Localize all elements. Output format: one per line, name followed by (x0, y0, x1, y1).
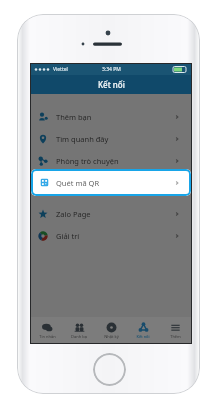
staticText: Giải trí (56, 231, 80, 241)
staticText: Kết nối (98, 79, 125, 90)
staticText: Tìm quanh đây (56, 134, 109, 144)
button[interactable]: Tìm quanh đây (31, 128, 191, 150)
staticText: Tin nhắn (39, 334, 56, 339)
button[interactable]: Tin nhắn (31, 317, 63, 343)
staticText: Viettel (53, 66, 68, 73)
staticText: Nhật ký (104, 334, 119, 339)
other: Home (93, 353, 126, 386)
button[interactable]: Phòng trò chuyện (31, 150, 191, 172)
staticText: Thêm bạn (56, 112, 92, 122)
staticText: Quét mã QR (56, 178, 100, 188)
staticText: Thêm (170, 334, 181, 339)
staticText: Danh bạ (71, 334, 87, 339)
button[interactable]: Quét mã QR (31, 169, 191, 196)
staticText: 3:34 PM (102, 66, 121, 73)
button[interactable]: Zalo Page (31, 203, 191, 225)
button[interactable]: Thêm bạn (31, 106, 191, 128)
staticText: Zalo Page (56, 209, 91, 219)
button[interactable]: Giải trí (31, 225, 191, 247)
staticText: Kết nối (136, 334, 150, 339)
button[interactable]: Nhật ký (95, 317, 127, 343)
staticText: Phòng trò chuyện (56, 156, 119, 166)
button[interactable]: Danh bạ (63, 317, 95, 343)
button[interactable]: Thêm (159, 317, 191, 343)
button[interactable]: Kết nối (127, 317, 159, 343)
